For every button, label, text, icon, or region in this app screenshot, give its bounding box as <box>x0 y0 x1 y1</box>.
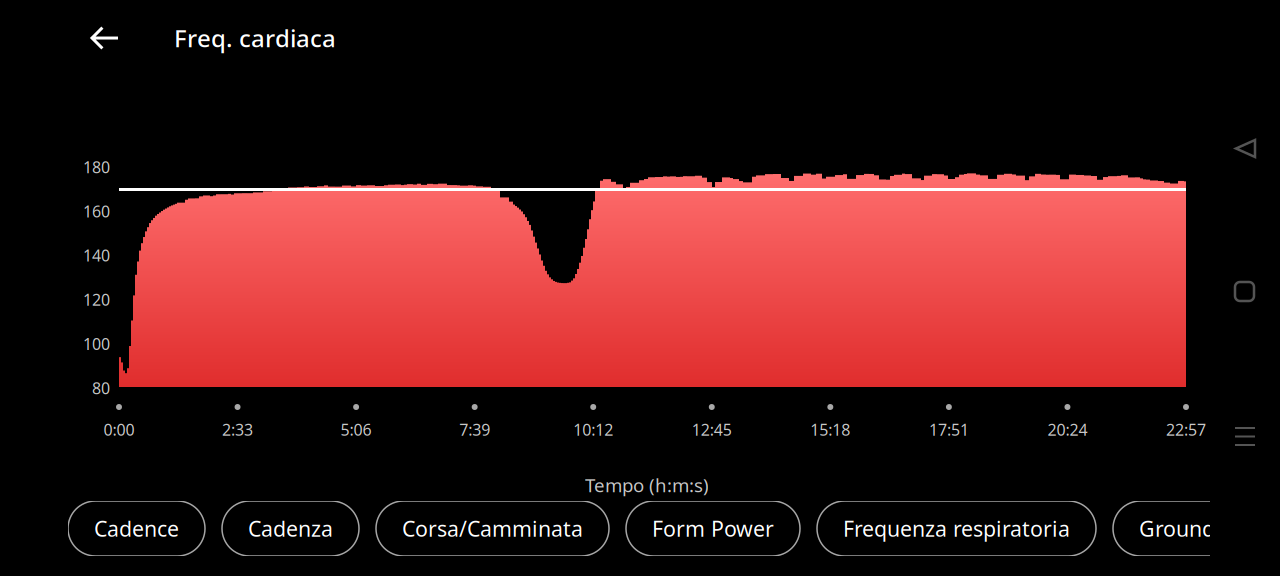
button[interactable]: Ground Time <box>1113 501 1280 556</box>
button[interactable]: Corsa/Camminata <box>376 501 609 556</box>
button[interactable]: Cadenza <box>222 501 359 556</box>
staticText: Cadenza <box>248 514 333 543</box>
staticText: Ground Time <box>1139 514 1271 543</box>
staticText: 80 <box>92 377 110 399</box>
staticText: 20:24 <box>1047 419 1087 440</box>
button[interactable]: Cadence <box>68 501 205 556</box>
button[interactable]: Frequenza respiratoria <box>817 501 1096 556</box>
staticText: Frequenza respiratoria <box>843 514 1070 543</box>
staticText: 180 <box>83 156 110 178</box>
staticText: Form Power <box>652 514 774 543</box>
staticText: 0:00 <box>103 419 134 440</box>
staticText: 7:39 <box>459 419 490 440</box>
staticText: 140 <box>83 245 110 266</box>
button[interactable]: Back <box>1222 125 1269 172</box>
button[interactable]: Back <box>72 3 138 73</box>
button[interactable]: Recent apps <box>1221 414 1269 459</box>
staticText: 120 <box>83 289 110 310</box>
staticText: Cadence <box>94 514 179 543</box>
staticText: Tempo (h:m:s) <box>585 473 709 497</box>
button[interactable]: Home <box>1221 268 1268 315</box>
staticText: Freq. cardiaca <box>174 22 336 54</box>
staticText: 22:57 <box>1166 419 1206 440</box>
staticText: Corsa/Camminata <box>402 514 583 543</box>
staticText: 5:06 <box>341 419 372 440</box>
staticText: 17:51 <box>929 419 969 440</box>
staticText: 10:12 <box>573 419 613 440</box>
button[interactable]: Form Power <box>626 501 800 556</box>
staticText: 160 <box>83 201 110 222</box>
staticText: 15:18 <box>810 419 850 440</box>
staticText: 100 <box>83 333 110 354</box>
staticText: 12:45 <box>692 419 732 440</box>
staticText: 2:33 <box>222 419 253 440</box>
